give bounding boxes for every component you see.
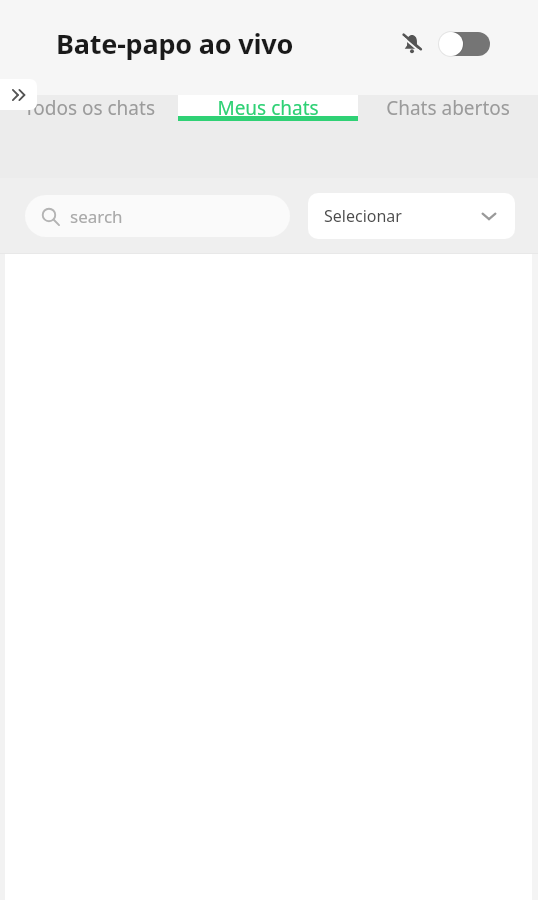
button[interactable]: Expandir <box>0 79 37 110</box>
staticText: Selecionar <box>324 205 402 227</box>
staticText: Bate-papo ao vivo <box>56 25 294 62</box>
button[interactable]: Selecionar <box>308 193 515 239</box>
staticText: Todos os chats <box>24 95 155 121</box>
button[interactable]: Meus chats <box>178 95 358 121</box>
button[interactable]: Todos os chats <box>0 95 178 121</box>
button[interactable]: Chats abertos <box>358 95 538 121</box>
button[interactable]: search <box>25 195 290 237</box>
staticText: Meus chats <box>217 95 319 121</box>
staticText: search <box>70 205 123 228</box>
button[interactable]: Ativar bate-papo <box>438 29 490 59</box>
staticText: Chats abertos <box>386 95 510 121</box>
button[interactable]: Notificações desativadas <box>392 24 432 64</box>
